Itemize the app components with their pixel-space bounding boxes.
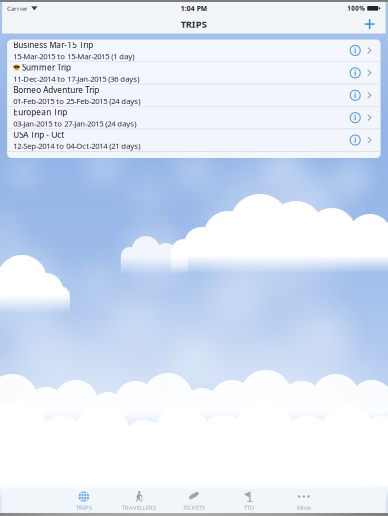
button[interactable]: More [276, 490, 331, 512]
staticText: Business Mar-15 Trip [13, 39, 93, 50]
button[interactable]: Borneo Adventure Trip [7, 84, 381, 106]
button[interactable]: TRAVELLERS [111, 490, 166, 512]
staticText: European Trip [13, 107, 67, 118]
staticText: More [297, 503, 311, 511]
staticText: 100% [347, 4, 365, 12]
staticText: Carrier [7, 4, 28, 12]
staticText: TRIPS [76, 503, 92, 511]
button[interactable]: European Trip [7, 107, 381, 129]
staticText: TTD [244, 503, 254, 511]
button[interactable]: Business Mar-15 Trip [7, 39, 381, 61]
staticText: Summer Trip [22, 62, 71, 73]
button[interactable]: USA Trip - Oct [7, 129, 381, 151]
staticText: 03-Jan-2015 to 27-Jan-2015 (24 days) [13, 118, 136, 129]
staticText: 12-Sep-2014 to 04-Oct-2014 (21 days) [13, 141, 140, 151]
staticText: TRIPS [181, 18, 207, 30]
button[interactable]: Add trip [360, 14, 380, 34]
button[interactable]: Summer Trip [7, 62, 381, 84]
button[interactable]: TICKETS [166, 490, 221, 512]
staticText: Borneo Adventure Trip [13, 84, 99, 95]
button[interactable]: TRIPS [56, 490, 111, 512]
staticText: 01-Feb-2015 to 25-Feb-2015 (24 days) [13, 96, 140, 106]
staticText: TICKETS [183, 503, 205, 511]
staticText: USA Trip - Oct [13, 129, 64, 140]
button[interactable]: TTD [221, 490, 276, 512]
staticText: 11-Dec-2014 to 17-Jan-2015 (36 days) [13, 73, 139, 84]
staticText: 1:04 PM [181, 4, 207, 13]
staticText: 15-Mar-2015 to 15-Mar-2015 (1 day) [13, 51, 134, 61]
staticText: TRAVELLERS [122, 503, 156, 511]
